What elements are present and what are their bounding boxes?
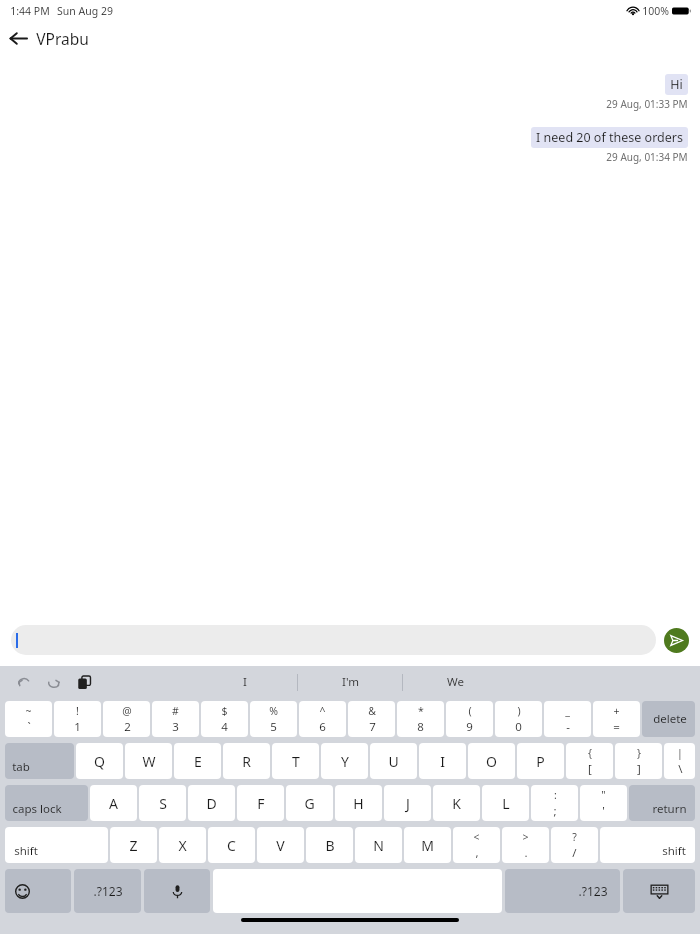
button[interactable]: Z	[110, 827, 157, 863]
button[interactable]: >	[502, 827, 549, 863]
button[interactable]: We	[403, 666, 508, 698]
button[interactable]: _	[544, 701, 591, 737]
button[interactable]: O	[468, 743, 515, 779]
button[interactable]: M	[404, 827, 451, 863]
button[interactable]: T	[272, 743, 319, 779]
button[interactable]: L	[482, 785, 529, 821]
button[interactable]: I need 20 of these orders	[531, 127, 688, 148]
button[interactable]: Send	[664, 628, 689, 653]
staticText: }	[637, 746, 641, 760]
button[interactable]: Undo	[12, 670, 36, 694]
button[interactable]: ?	[551, 827, 598, 863]
button[interactable]: !	[54, 701, 101, 737]
button[interactable]: Hide keyboard	[623, 869, 695, 913]
button[interactable]: Hi	[665, 74, 688, 95]
button[interactable]: K	[433, 785, 480, 821]
button[interactable]: )	[495, 701, 542, 737]
staticText: C	[227, 836, 236, 855]
button[interactable]: @	[103, 701, 150, 737]
button[interactable]: Voice input	[144, 869, 210, 913]
button[interactable]: {	[566, 743, 613, 779]
staticText: U	[388, 752, 399, 771]
button[interactable]: Clipboard	[72, 670, 96, 694]
staticText: :	[554, 788, 557, 802]
button[interactable]: U	[370, 743, 417, 779]
button[interactable]: D	[188, 785, 235, 821]
button[interactable]: P	[517, 743, 564, 779]
staticText: [	[588, 761, 592, 777]
button[interactable]: "	[580, 785, 627, 821]
button[interactable]: return	[629, 785, 695, 821]
button[interactable]: caps lock	[5, 785, 88, 821]
button[interactable]: Emoji	[5, 869, 71, 913]
button[interactable]: Y	[321, 743, 368, 779]
button[interactable]: C	[208, 827, 255, 863]
staticText: E	[194, 752, 202, 771]
staticText: 8	[417, 719, 424, 735]
button[interactable]: Redo	[42, 670, 66, 694]
button[interactable]: J	[384, 785, 431, 821]
button[interactable]: .?123	[74, 869, 141, 913]
staticText: $	[221, 704, 228, 718]
button[interactable]: W	[125, 743, 172, 779]
button[interactable]: G	[286, 785, 333, 821]
button[interactable]: &	[348, 701, 395, 737]
button[interactable]: }	[615, 743, 662, 779]
button[interactable]: Q	[76, 743, 123, 779]
button[interactable]: shift	[5, 827, 108, 863]
button[interactable]: #	[152, 701, 199, 737]
staticText: >	[522, 830, 529, 844]
button[interactable]: F	[237, 785, 284, 821]
button[interactable]: delete	[642, 701, 695, 737]
button[interactable]: $	[201, 701, 248, 737]
staticText: R	[242, 752, 251, 771]
button[interactable]: I	[192, 666, 297, 698]
button[interactable]: tab	[5, 743, 74, 779]
staticText: Sun Aug 29	[57, 4, 113, 18]
staticText: G	[304, 794, 315, 813]
button[interactable]	[11, 625, 656, 655]
staticText: Hi	[670, 76, 683, 93]
staticText: 2	[124, 719, 131, 735]
button[interactable]: *	[397, 701, 444, 737]
staticText: 9	[466, 719, 473, 735]
button[interactable]: <	[453, 827, 500, 863]
button[interactable]: A	[90, 785, 137, 821]
staticText: .?123	[93, 883, 123, 899]
staticText: A	[109, 794, 118, 813]
staticText: <	[473, 830, 480, 844]
staticText: +	[613, 704, 620, 718]
button[interactable]: V	[257, 827, 304, 863]
button[interactable]: shift	[600, 827, 695, 863]
staticText: Q	[94, 752, 105, 771]
staticText: O	[486, 752, 497, 771]
button[interactable]: E	[174, 743, 221, 779]
button[interactable]: (	[446, 701, 493, 737]
button[interactable]: :	[531, 785, 578, 821]
staticText: =	[613, 719, 620, 735]
button[interactable]: I	[419, 743, 466, 779]
staticText: 100%	[642, 4, 669, 18]
button[interactable]: H	[335, 785, 382, 821]
button[interactable]: +	[593, 701, 640, 737]
staticText: ]	[637, 761, 641, 777]
button[interactable]: Back	[0, 22, 36, 54]
button[interactable]: N	[355, 827, 402, 863]
button[interactable]: I'm	[298, 666, 402, 698]
staticText: B	[325, 836, 335, 855]
staticText: *	[418, 704, 424, 718]
button[interactable]: %	[250, 701, 297, 737]
staticText: #	[172, 704, 179, 718]
button[interactable]: B	[306, 827, 353, 863]
button[interactable]: |	[664, 743, 695, 779]
button[interactable]: X	[159, 827, 206, 863]
staticText: I need 20 of these orders	[536, 129, 683, 146]
button[interactable]: ^	[299, 701, 346, 737]
button[interactable]: .?123	[505, 869, 620, 913]
button[interactable]: S	[139, 785, 186, 821]
staticText: ~	[25, 704, 32, 718]
button[interactable]: ~	[5, 701, 52, 737]
staticText: /	[572, 845, 577, 861]
button[interactable]: R	[223, 743, 270, 779]
